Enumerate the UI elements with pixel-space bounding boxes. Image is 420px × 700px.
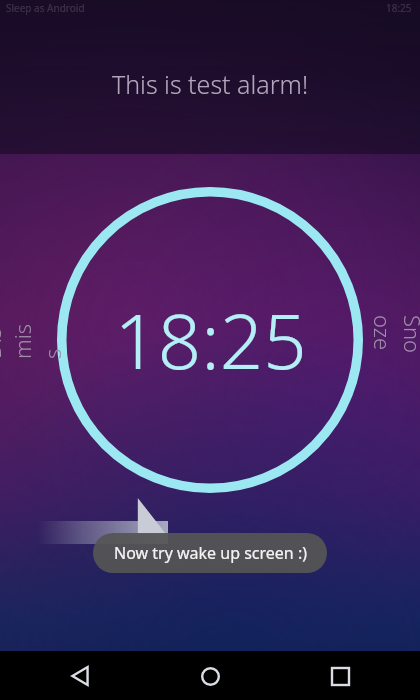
staticText: Snooze bbox=[368, 315, 420, 359]
staticText: Now try wake up screen :) bbox=[114, 542, 307, 564]
button[interactable]: Snooze bbox=[376, 262, 420, 412]
button[interactable]: Recent apps bbox=[316, 652, 364, 700]
button[interactable]: Back bbox=[56, 652, 104, 700]
staticText: 18:25 bbox=[386, 1, 412, 15]
button[interactable]: Alarm ring bbox=[57, 187, 363, 493]
staticText: This is test alarm! bbox=[0, 67, 420, 101]
button[interactable]: Dismiss bbox=[0, 262, 44, 412]
button[interactable]: Now try wake up screen :) bbox=[93, 533, 327, 573]
button[interactable]: Home bbox=[186, 652, 234, 700]
staticText: Sleep as Android bbox=[6, 1, 85, 15]
staticText: 18:25 bbox=[114, 288, 307, 392]
staticText: Dismiss bbox=[0, 315, 67, 359]
